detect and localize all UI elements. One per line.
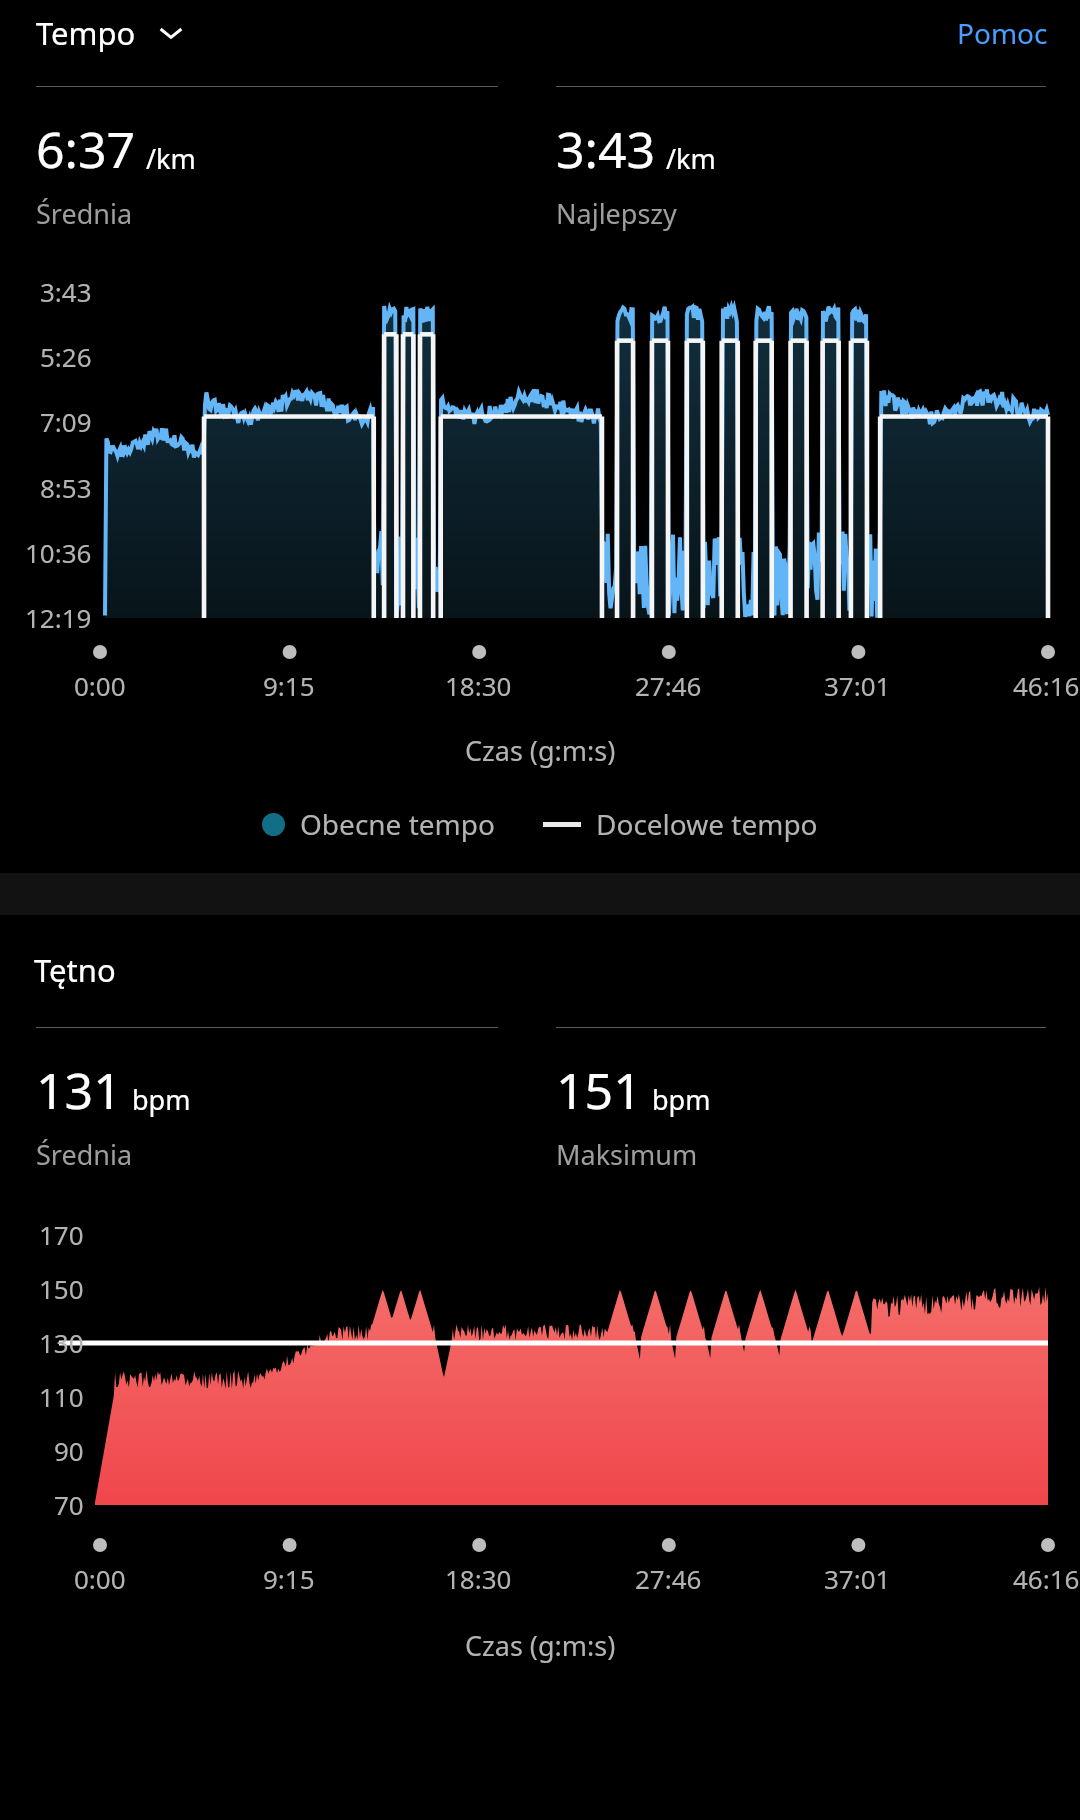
staticText: /km <box>666 140 716 177</box>
staticText: 18:30 <box>445 1561 512 1596</box>
staticText: 27:46 <box>635 668 702 703</box>
staticText: Średnia <box>36 195 133 232</box>
staticText: 0:00 <box>74 668 126 703</box>
staticText: 110 <box>39 1379 84 1414</box>
staticText: 27:46 <box>635 1561 702 1596</box>
staticText: 9:15 <box>263 1561 315 1596</box>
staticText: Tętno <box>34 949 116 991</box>
button[interactable]: Pomoc <box>953 8 1052 58</box>
staticText: Docelowe tempo <box>596 805 818 843</box>
staticText: bpm <box>132 1081 191 1118</box>
staticText: 9:15 <box>263 668 315 703</box>
staticText: 7:09 <box>40 404 92 439</box>
other: Rozwiń <box>158 24 184 42</box>
staticText: Średnia <box>36 1136 133 1173</box>
staticText: 5:26 <box>40 339 92 374</box>
staticText: 90 <box>54 1433 84 1468</box>
staticText: 6:37 <box>36 115 136 183</box>
staticText: 3:43 <box>556 115 656 183</box>
staticText: 18:30 <box>445 668 512 703</box>
staticText: Tempo <box>36 12 136 54</box>
staticText: 8:53 <box>40 470 92 505</box>
staticText: 70 <box>54 1487 84 1522</box>
staticText: 10:36 <box>25 535 92 570</box>
staticText: 37:01 <box>824 1561 891 1596</box>
staticText: 46:16 <box>1013 1561 1080 1596</box>
button[interactable]: Obecne tempo <box>258 801 499 847</box>
staticText: 0:00 <box>74 1561 126 1596</box>
staticText: 131 <box>36 1056 122 1124</box>
button[interactable]: Tempo <box>34 6 186 60</box>
staticText: 150 <box>39 1271 84 1306</box>
staticText: Maksimum <box>556 1136 698 1173</box>
staticText: bpm <box>652 1081 711 1118</box>
staticText: 130 <box>39 1325 84 1360</box>
staticText: Obecne tempo <box>300 805 495 843</box>
staticText: Najlepszy <box>556 195 677 232</box>
staticText: 37:01 <box>824 668 891 703</box>
staticText: Czas (g:m:s) <box>465 1627 616 1664</box>
staticText: 151 <box>556 1056 642 1124</box>
staticText: 12:19 <box>25 600 92 635</box>
staticText: 170 <box>39 1217 84 1252</box>
staticText: Pomoc <box>957 14 1048 52</box>
staticText: 46:16 <box>1013 668 1080 703</box>
staticText: Czas (g:m:s) <box>465 732 616 769</box>
button[interactable]: Docelowe tempo <box>539 801 822 847</box>
staticText: /km <box>146 140 196 177</box>
staticText: 3:43 <box>40 274 92 309</box>
